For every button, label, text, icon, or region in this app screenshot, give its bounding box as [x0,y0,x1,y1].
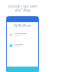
button[interactable] [6,29,38,40]
button[interactable] [6,40,38,51]
staticText: Design your own [8,3,37,9]
staticText: workflow [14,7,30,13]
staticText: My Workflows [14,24,31,27]
